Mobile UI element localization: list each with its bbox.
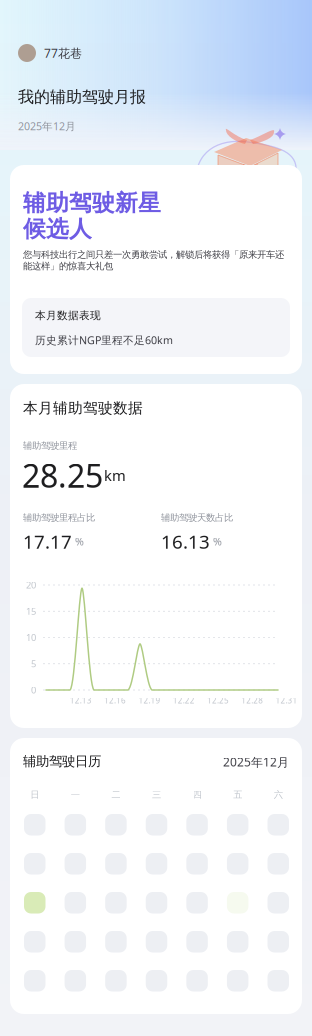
staticText: 本月辅助驾驶数据 — [23, 399, 143, 417]
staticText: 2025年12月 — [18, 119, 76, 133]
staticText: 20 — [26, 579, 36, 591]
staticText: 六 — [274, 789, 283, 800]
staticText: 一 — [71, 789, 80, 800]
staticText: 历史累计NGP里程不足60km — [35, 333, 173, 347]
button[interactable]: 77花巷 — [18, 42, 82, 64]
staticText: 10 — [26, 631, 36, 644]
staticText: 12.13 — [70, 695, 92, 706]
staticText: 辅助驾驶里程 — [23, 440, 77, 451]
staticText: 16.13 — [161, 529, 210, 554]
staticText: % — [213, 534, 222, 548]
staticText: 辅助驾驶新星 — [23, 189, 161, 217]
staticText: 15 — [26, 605, 36, 617]
staticText: 辅助驾驶里程占比 — [23, 512, 95, 523]
staticText: 五 — [233, 789, 242, 800]
staticText: % — [75, 534, 84, 548]
staticText: 本月数据表现 — [35, 309, 101, 322]
staticText: 17.17 — [23, 529, 72, 554]
staticText: 2025年12月 — [223, 754, 289, 770]
staticText: 辅助驾驶日历 — [23, 753, 101, 769]
staticText: 12.19 — [138, 695, 160, 706]
staticText: 12.25 — [207, 695, 229, 706]
staticText: 12.31 — [276, 695, 298, 706]
staticText: 候选人 — [23, 215, 92, 243]
staticText: 辅助驾驶天数占比 — [161, 512, 233, 523]
staticText: 二 — [111, 789, 120, 800]
staticText: km — [104, 465, 126, 485]
staticText: 12.28 — [241, 695, 263, 706]
staticText: 您与科技出行之间只差一次勇敢尝试，解锁后将获得「原来开车还能这样」的惊喜大礼包 — [23, 249, 284, 272]
staticText: 5 — [31, 658, 36, 670]
staticText: 四 — [193, 789, 202, 800]
staticText: 12.16 — [104, 695, 126, 706]
staticText: 77花巷 — [44, 45, 82, 61]
staticText: 28.25 — [22, 454, 103, 496]
staticText: 12.22 — [173, 695, 195, 706]
staticText: 0 — [31, 684, 36, 696]
staticText: 日 — [30, 789, 39, 800]
staticText: 三 — [152, 789, 161, 800]
staticText: 我的辅助驾驶月报 — [18, 87, 146, 107]
